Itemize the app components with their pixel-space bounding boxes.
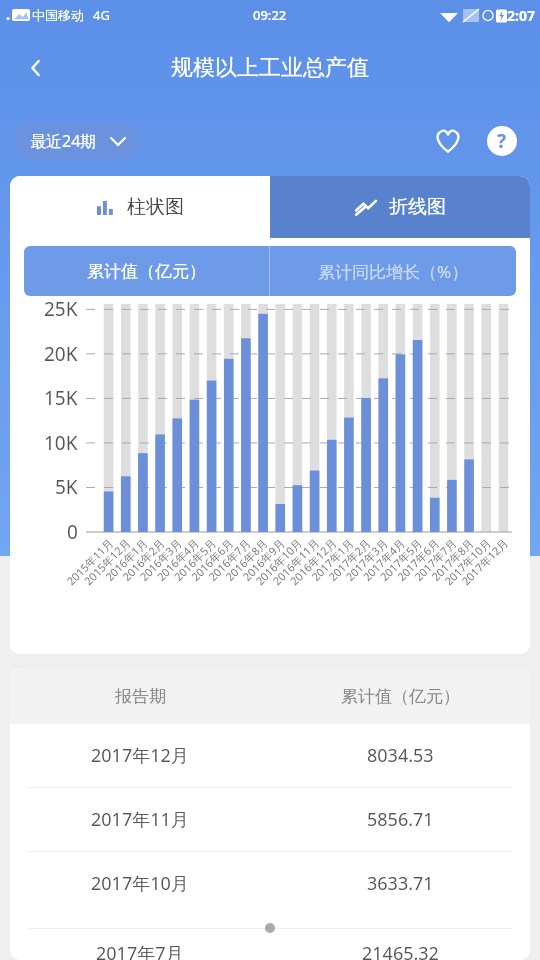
staticText: 累计值（亿元） xyxy=(341,686,460,707)
button[interactable]: 2017年11月 xyxy=(10,788,530,852)
button[interactable]: 柱状图 xyxy=(10,176,270,238)
staticText: 2:07 xyxy=(507,6,535,25)
staticText: 21465.32 xyxy=(362,941,439,960)
button[interactable]: 收藏 xyxy=(424,117,472,165)
staticText: 3633.71 xyxy=(367,871,434,896)
button[interactable]: 累计值（亿元） xyxy=(24,246,269,296)
staticText: 2017年10月 xyxy=(91,871,189,896)
staticText: 2017年7月 xyxy=(96,941,184,960)
staticText: 折线图 xyxy=(389,195,446,219)
button[interactable]: 累计同比增长（%） xyxy=(270,246,516,296)
staticText: ? xyxy=(497,128,507,154)
button[interactable]: 2017年10月 xyxy=(10,852,530,915)
staticText: 累计同比增长（%） xyxy=(318,260,469,283)
button[interactable]: 最近24期 xyxy=(14,122,141,160)
staticText: 中国移动 xyxy=(32,7,84,23)
staticText: 5856.71 xyxy=(367,807,434,832)
staticText: 累计值（亿元） xyxy=(87,261,206,282)
staticText: 规模以上工业总产值 xyxy=(171,54,369,82)
staticText: 最近24期 xyxy=(30,130,97,152)
staticText: 柱状图 xyxy=(127,195,184,219)
staticText: 8034.53 xyxy=(367,743,434,768)
staticText: 报告期 xyxy=(115,686,166,707)
staticText: 2017年12月 xyxy=(91,743,189,768)
button[interactable]: 折线图 xyxy=(270,176,530,238)
button[interactable]: 2017年12月 xyxy=(10,724,530,788)
button[interactable]: 2017年7月 xyxy=(10,941,530,960)
staticText: 09:22 xyxy=(253,6,287,24)
staticText: 4G xyxy=(93,6,110,24)
button[interactable]: 返回 xyxy=(10,42,62,94)
staticText: 2017年11月 xyxy=(91,807,189,832)
button[interactable]: 帮助 xyxy=(478,117,526,165)
